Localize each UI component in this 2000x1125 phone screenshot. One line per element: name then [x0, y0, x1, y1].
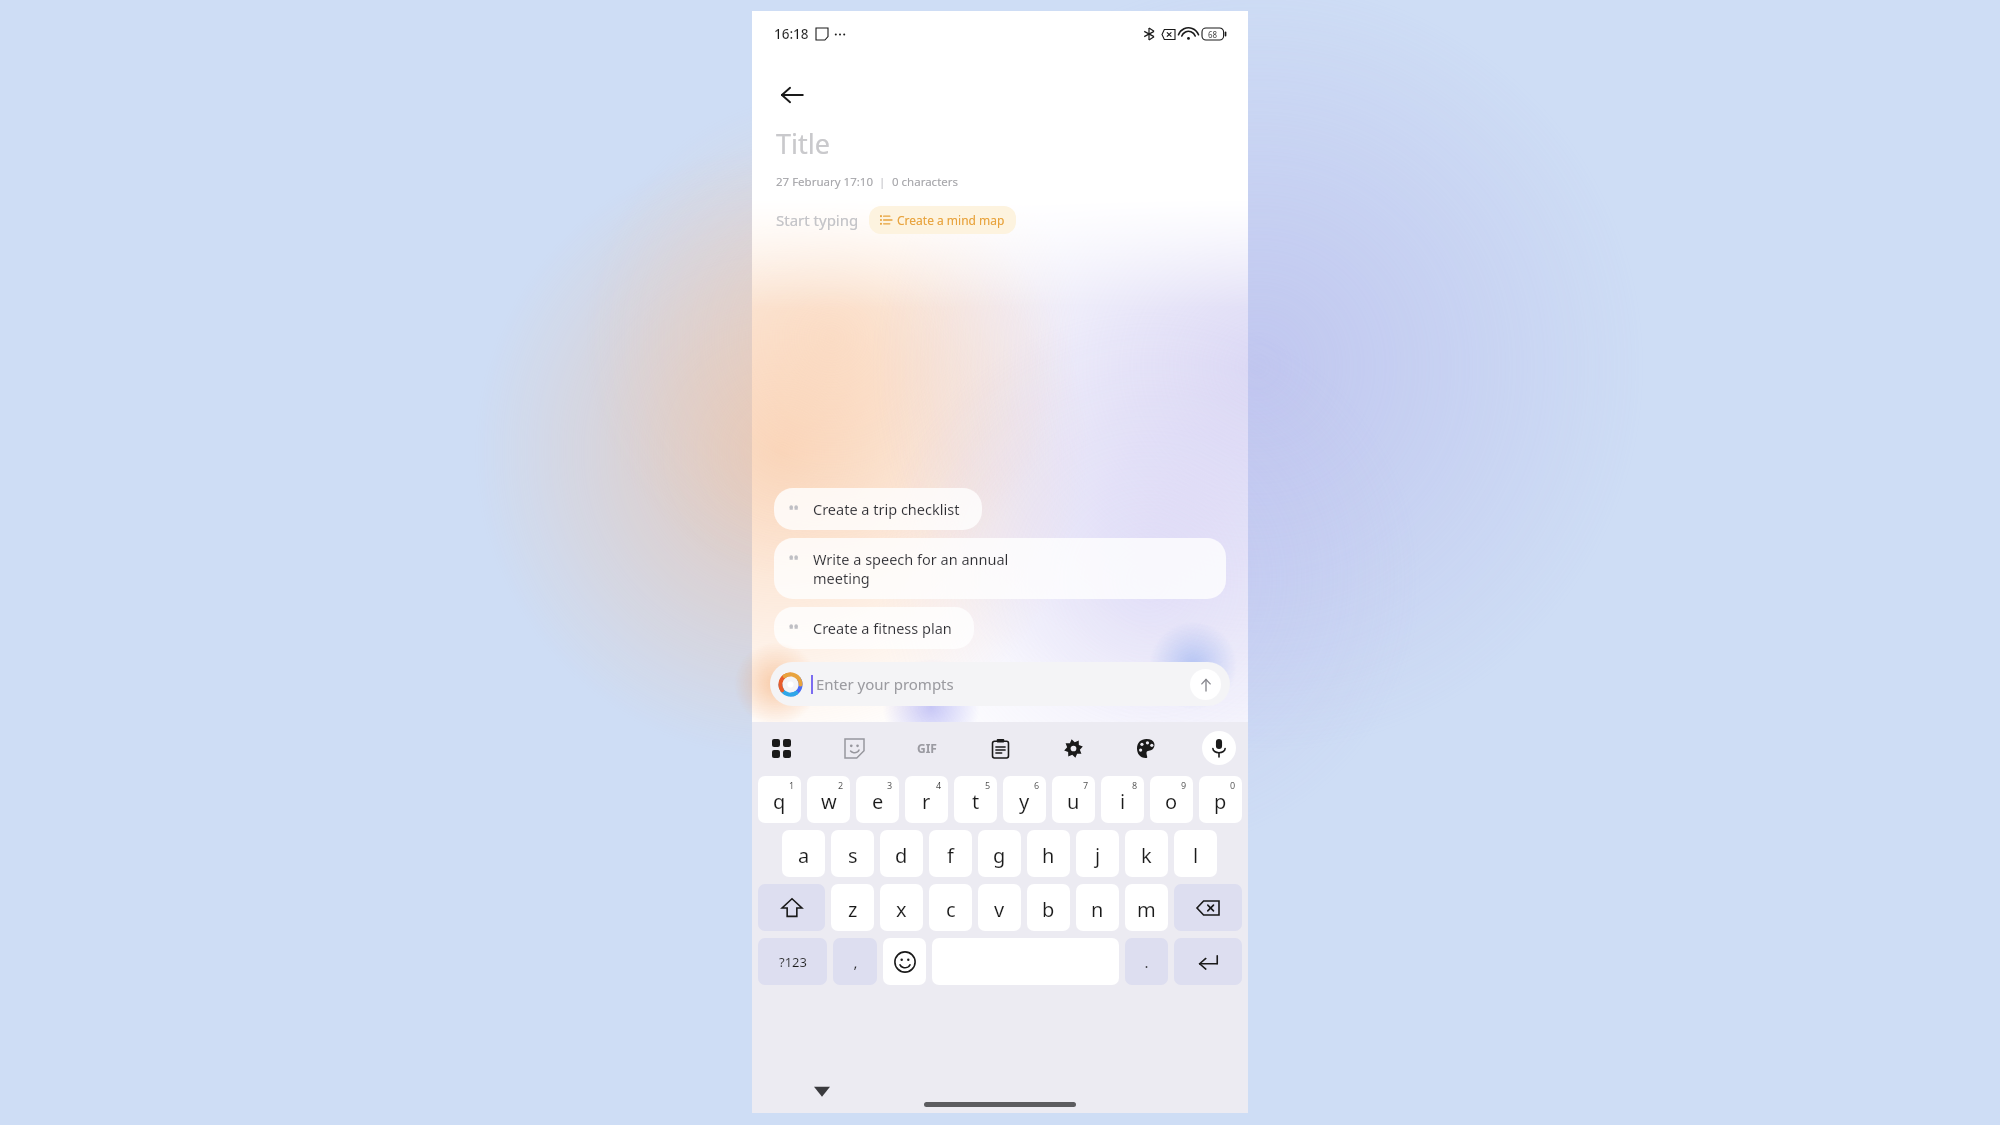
button[interactable]: Emoji: [883, 938, 926, 985]
button[interactable]: j: [1076, 830, 1119, 877]
staticText: a: [798, 842, 810, 869]
staticText: o: [1165, 788, 1178, 815]
button[interactable]: p: [1199, 776, 1242, 823]
button[interactable]: Enter: [1174, 938, 1242, 985]
staticText: Start typing: [776, 210, 859, 230]
button[interactable]: z: [831, 884, 874, 931]
staticText: 5: [985, 779, 991, 791]
button[interactable]: Create a trip checklist: [774, 488, 982, 530]
button[interactable]: n: [1076, 884, 1119, 931]
staticText: r: [922, 788, 931, 815]
staticText: t: [972, 788, 980, 815]
staticText: s: [848, 842, 858, 869]
staticText: 0: [1230, 779, 1236, 791]
button[interactable]: Backspace: [1174, 884, 1242, 931]
staticText: f: [947, 842, 954, 869]
button[interactable]: Send: [1190, 669, 1221, 700]
staticText: 9: [1181, 779, 1187, 791]
button[interactable]: Hide keyboard: [804, 1073, 840, 1109]
button[interactable]: w: [807, 776, 850, 823]
staticText: 0 characters: [892, 174, 959, 190]
button[interactable]: Settings: [1056, 731, 1090, 765]
button[interactable]: d: [880, 830, 923, 877]
staticText: 1: [789, 779, 795, 791]
staticText: k: [1141, 842, 1152, 869]
staticText: 16:18: [774, 25, 809, 43]
staticText: e: [872, 788, 884, 815]
button[interactable]: l: [1174, 830, 1217, 877]
button[interactable]: Enter your prompts: [770, 662, 1230, 706]
button[interactable]: o: [1150, 776, 1193, 823]
staticText: 2: [838, 779, 844, 791]
button[interactable]: e: [856, 776, 899, 823]
staticText: Create a fitness plan: [813, 618, 952, 638]
staticText: g: [993, 842, 1006, 869]
staticText: Write a speech for an annual meeting: [813, 549, 1009, 588]
staticText: 3: [887, 779, 893, 791]
staticText: p: [1214, 788, 1227, 815]
staticText: Create a mind map: [897, 212, 1005, 228]
staticText: h: [1042, 842, 1055, 869]
button[interactable]: x: [880, 884, 923, 931]
staticText: n: [1091, 896, 1104, 923]
staticText: v: [994, 896, 1005, 923]
button[interactable]: Apps: [764, 731, 798, 765]
staticText: 6: [1034, 779, 1040, 791]
staticText: ?123: [779, 953, 807, 971]
button[interactable]: Create a mind map: [869, 206, 1016, 234]
staticText: y: [1019, 788, 1030, 815]
staticText: l: [1193, 842, 1199, 869]
staticText: 8: [1132, 779, 1138, 791]
staticText: w: [821, 788, 837, 815]
button[interactable]: .: [1125, 938, 1168, 985]
button[interactable]: Create a fitness plan: [774, 607, 974, 649]
button[interactable]: b: [1027, 884, 1070, 931]
staticText: 4: [936, 779, 942, 791]
button[interactable]: a: [782, 830, 825, 877]
button[interactable]: Sticker: [837, 731, 871, 765]
staticText: Create a trip checklist: [813, 499, 960, 519]
button[interactable]: v: [978, 884, 1021, 931]
button[interactable]: q: [758, 776, 801, 823]
button[interactable]: k: [1125, 830, 1168, 877]
staticText: b: [1042, 896, 1055, 923]
staticText: z: [848, 896, 858, 923]
staticText: |: [873, 174, 892, 190]
button[interactable]: Back: [768, 71, 816, 119]
staticText: Enter your prompts: [816, 674, 954, 694]
button[interactable]: f: [929, 830, 972, 877]
button[interactable]: r: [905, 776, 948, 823]
staticText: j: [1095, 842, 1101, 869]
staticText: .: [1144, 952, 1149, 972]
button[interactable]: g: [978, 830, 1021, 877]
staticText: m: [1137, 896, 1156, 923]
button[interactable]: c: [929, 884, 972, 931]
button[interactable]: Theme: [1129, 731, 1163, 765]
staticText: Title: [776, 125, 830, 162]
staticText: i: [1120, 788, 1126, 815]
staticText: q: [773, 788, 786, 815]
button[interactable]: GIF: [910, 731, 944, 765]
staticText: d: [895, 842, 908, 869]
button[interactable]: Voice input: [1202, 731, 1236, 765]
staticText: 27 February 17:10: [776, 174, 873, 190]
button[interactable]: ,: [833, 938, 877, 985]
button[interactable]: i: [1101, 776, 1144, 823]
staticText: GIF: [917, 740, 937, 756]
button[interactable]: y: [1003, 776, 1046, 823]
button[interactable]: h: [1027, 830, 1070, 877]
button[interactable]: s: [831, 830, 874, 877]
staticText: ,: [853, 952, 858, 972]
staticText: 7: [1083, 779, 1089, 791]
staticText: c: [946, 896, 956, 923]
button[interactable]: u: [1052, 776, 1095, 823]
button[interactable]: m: [1125, 884, 1168, 931]
staticText: x: [896, 896, 907, 923]
button[interactable]: t: [954, 776, 997, 823]
button[interactable]: Clipboard: [983, 731, 1017, 765]
button[interactable]: Shift: [758, 884, 825, 931]
button[interactable]: Write a speech for an annual meeting: [774, 538, 1226, 599]
button[interactable]: ?123: [758, 938, 827, 985]
staticText: 68: [1208, 29, 1218, 40]
